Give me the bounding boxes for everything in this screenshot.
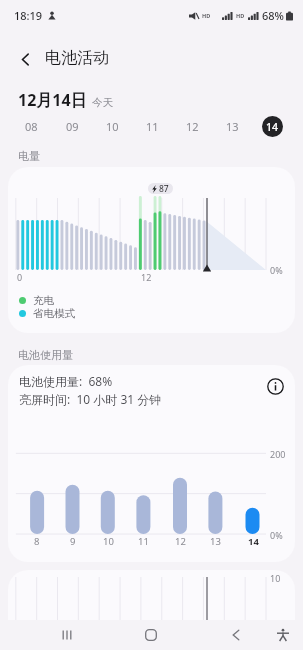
staticText: 电量	[18, 149, 40, 163]
staticText: HD	[202, 12, 211, 19]
staticText: 09	[66, 119, 79, 134]
staticText: 12	[186, 119, 199, 134]
staticText: 今天	[92, 96, 113, 109]
staticText: 14	[266, 120, 279, 134]
staticText: 13	[226, 119, 239, 134]
staticText: 11	[146, 119, 159, 134]
staticText: 18:19	[14, 8, 43, 23]
button[interactable]: 13	[212, 112, 252, 140]
staticText: 87	[159, 183, 169, 194]
staticText: HD	[236, 12, 245, 19]
staticText: 0%	[270, 529, 283, 541]
staticText: 10	[106, 119, 119, 134]
staticText: 11	[138, 535, 149, 548]
button[interactable]: Info	[264, 375, 286, 397]
staticText: 亮屏时间: 10 小时 31 分钟	[19, 391, 162, 407]
staticText: 9	[70, 535, 76, 548]
staticText: 0%	[270, 264, 283, 276]
button[interactable]: 10	[92, 112, 132, 140]
staticText: 充电	[33, 294, 54, 307]
staticText: 12	[141, 271, 152, 283]
staticText: 14	[248, 535, 259, 548]
staticText: 12	[175, 535, 186, 548]
staticText: 200	[270, 448, 286, 460]
staticText: 13	[210, 535, 221, 548]
button[interactable]: Accessibility	[265, 620, 301, 650]
button[interactable]: Back	[216, 620, 256, 650]
staticText: 0	[17, 271, 23, 283]
staticText: 10	[103, 535, 114, 548]
button[interactable]: Recents	[47, 620, 87, 650]
staticText: 68%	[262, 8, 284, 23]
staticText: 电池使用量: 68%	[19, 373, 113, 389]
button[interactable]: Back	[12, 46, 38, 72]
staticText: 12月14日	[18, 89, 87, 111]
button[interactable]: 12	[172, 112, 212, 140]
button[interactable]: 09	[52, 112, 92, 140]
button[interactable]: 08	[11, 112, 52, 140]
button[interactable]: 11	[132, 112, 172, 140]
staticText: 省电模式	[33, 307, 75, 320]
button[interactable]: Home	[131, 620, 171, 650]
staticText: 08	[25, 119, 38, 134]
button[interactable]: 14	[252, 112, 292, 140]
staticText: 8	[34, 535, 40, 548]
staticText: 电池使用量	[18, 348, 73, 362]
staticText: 10	[270, 572, 281, 584]
staticText: 电池活动	[45, 48, 109, 68]
